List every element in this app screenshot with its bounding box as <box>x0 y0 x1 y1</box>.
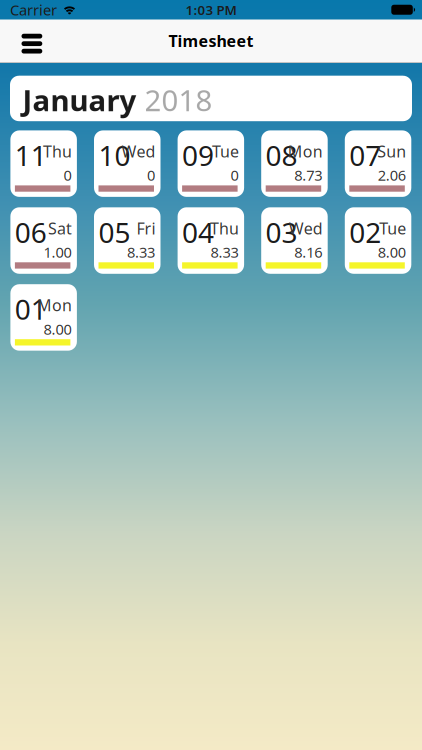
staticText: Wed <box>121 141 155 162</box>
staticText: 03 <box>266 213 298 251</box>
staticText: Sat <box>48 218 72 239</box>
staticText: Thu <box>43 141 72 162</box>
staticText: Tue <box>212 141 239 162</box>
button[interactable]: 09 <box>178 130 244 197</box>
staticText: January <box>22 80 136 119</box>
button[interactable]: 01 <box>10 284 77 351</box>
staticText: Wed <box>289 218 323 239</box>
staticText: 2018 <box>144 80 212 119</box>
staticText: Mon <box>288 141 323 162</box>
staticText: Carrier <box>10 0 57 19</box>
staticText: Thu <box>210 218 239 239</box>
staticText: 2.06 <box>378 165 406 185</box>
staticText: 02 <box>349 213 381 251</box>
staticText: 1:03 PM <box>185 1 236 19</box>
staticText: Fri <box>136 218 155 239</box>
staticText: 01 <box>15 290 47 328</box>
staticText: 8.33 <box>211 242 239 262</box>
button[interactable]: 02 <box>345 207 411 274</box>
staticText: 8.33 <box>127 242 155 262</box>
staticText: 05 <box>98 213 130 251</box>
staticText: Timesheet <box>168 30 253 51</box>
staticText: Sun <box>377 141 406 162</box>
staticText: 09 <box>182 137 214 174</box>
staticText: 8.00 <box>378 242 406 262</box>
staticText: 0 <box>63 165 71 185</box>
button[interactable]: 04 <box>178 207 244 274</box>
staticText: 0 <box>231 165 239 185</box>
button[interactable]: 03 <box>261 207 328 274</box>
button[interactable]: 05 <box>94 207 160 274</box>
button[interactable]: 11 <box>10 130 77 197</box>
staticText: 07 <box>349 137 381 174</box>
staticText: 0 <box>147 165 155 185</box>
staticText: 04 <box>182 213 214 251</box>
staticText: 08 <box>266 137 298 174</box>
button[interactable]: Menu <box>0 23 52 59</box>
staticText: 8.16 <box>294 242 322 262</box>
button[interactable]: 07 <box>345 130 411 197</box>
button[interactable]: January <box>10 76 412 121</box>
staticText: Mon <box>37 294 72 316</box>
staticText: 8.00 <box>43 319 71 339</box>
staticText: 11 <box>15 137 47 174</box>
button[interactable]: 10 <box>94 130 160 197</box>
button[interactable]: 08 <box>261 130 328 197</box>
button[interactable]: 06 <box>10 207 77 274</box>
staticText: 1.00 <box>43 242 71 262</box>
staticText: 06 <box>15 213 47 251</box>
staticText: 8.73 <box>294 165 322 185</box>
staticText: 10 <box>98 137 130 174</box>
staticText: Tue <box>379 218 406 239</box>
